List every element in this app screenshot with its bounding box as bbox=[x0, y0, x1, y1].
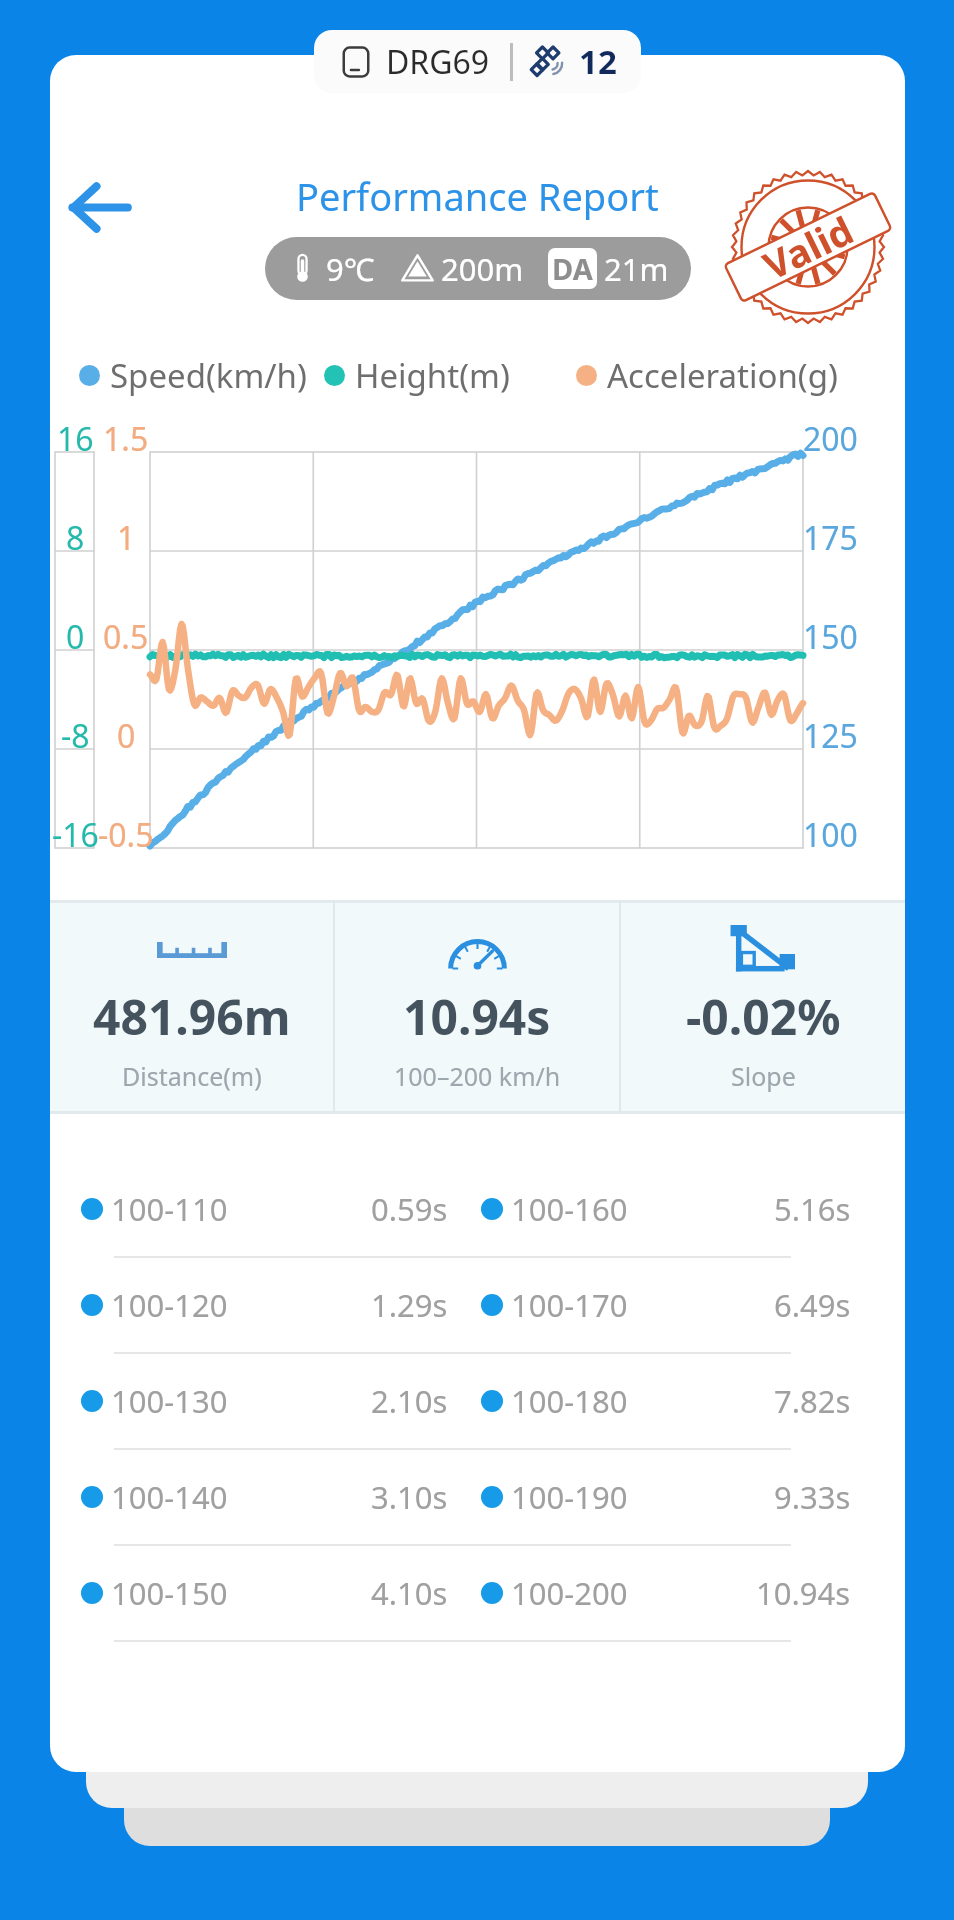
button[interactable]: 100-110 bbox=[50, 1162, 450, 1256]
staticText: Speed(km/h) bbox=[110, 353, 307, 398]
button[interactable]: DRG69 bbox=[314, 30, 641, 93]
staticText: DRG69 bbox=[386, 40, 490, 84]
staticText: 100–200 km/h bbox=[394, 1059, 561, 1093]
staticText: 16 bbox=[57, 417, 94, 461]
staticText: 100-160 bbox=[511, 1188, 628, 1230]
staticText: 200 bbox=[803, 417, 858, 461]
staticText: 0 bbox=[117, 714, 136, 758]
staticText: 100-150 bbox=[111, 1572, 228, 1614]
button[interactable]: Valid certification stamp bbox=[732, 171, 884, 323]
staticText: 8 bbox=[66, 516, 85, 560]
staticText: 100-170 bbox=[511, 1284, 628, 1326]
button[interactable]: 481.96m bbox=[50, 900, 333, 1114]
staticText: Performance Report bbox=[296, 170, 659, 222]
staticText: -0.5 bbox=[98, 813, 154, 857]
staticText: -8 bbox=[61, 714, 90, 758]
staticText: 1.29s bbox=[371, 1284, 448, 1326]
staticText: 200m bbox=[441, 248, 524, 290]
staticText: 3.10s bbox=[371, 1476, 448, 1518]
staticText: 9℃ bbox=[326, 248, 375, 290]
staticText: 7.82s bbox=[774, 1380, 851, 1422]
button[interactable]: 10.94s bbox=[335, 900, 619, 1114]
staticText: 0 bbox=[66, 615, 85, 659]
staticText: 150 bbox=[803, 615, 858, 659]
staticText: 100-180 bbox=[511, 1380, 628, 1422]
button[interactable]: 100-130 bbox=[50, 1354, 450, 1448]
button[interactable]: 9℃ bbox=[265, 237, 691, 300]
staticText: 125 bbox=[803, 714, 858, 758]
staticText: 100 bbox=[803, 813, 858, 857]
button[interactable]: Back bbox=[50, 155, 151, 259]
staticText: DA bbox=[552, 249, 593, 288]
staticText: -0.02% bbox=[686, 984, 841, 1049]
staticText: 5.16s bbox=[774, 1188, 851, 1230]
button[interactable]: 100-140 bbox=[50, 1450, 450, 1544]
button[interactable]: 100-120 bbox=[50, 1258, 450, 1352]
button[interactable]: 100-190 bbox=[450, 1450, 905, 1544]
button[interactable]: 100-160 bbox=[450, 1162, 905, 1256]
staticText: 10.94s bbox=[403, 984, 551, 1049]
staticText: 4.10s bbox=[371, 1572, 448, 1614]
staticText: 100-190 bbox=[511, 1476, 628, 1518]
staticText: 9.33s bbox=[774, 1476, 851, 1518]
staticText: 21m bbox=[604, 248, 669, 290]
staticText: 6.49s bbox=[774, 1284, 851, 1326]
button[interactable]: 100-150 bbox=[50, 1546, 450, 1640]
staticText: Slope bbox=[731, 1059, 796, 1093]
button[interactable]: 100-200 bbox=[450, 1546, 905, 1640]
staticText: 481.96m bbox=[93, 984, 291, 1049]
staticText: 1.5 bbox=[103, 417, 149, 461]
staticText: 100-140 bbox=[111, 1476, 228, 1518]
button[interactable]: 100-180 bbox=[450, 1354, 905, 1448]
staticText: Distance(m) bbox=[122, 1059, 262, 1093]
button[interactable]: -0.02% bbox=[621, 900, 905, 1114]
staticText: 10.94s bbox=[756, 1572, 851, 1614]
staticText: 100-120 bbox=[111, 1284, 228, 1326]
staticText: 1 bbox=[117, 516, 136, 560]
staticText: -16 bbox=[52, 813, 99, 857]
staticText: 0.5 bbox=[103, 615, 149, 659]
staticText: 100-130 bbox=[111, 1380, 228, 1422]
staticText: Valid bbox=[754, 203, 862, 291]
staticText: 0.59s bbox=[371, 1188, 448, 1230]
button[interactable]: 100-170 bbox=[450, 1258, 905, 1352]
staticText: 175 bbox=[803, 516, 858, 560]
staticText: Height(m) bbox=[355, 353, 510, 398]
staticText: Acceleration(g) bbox=[607, 353, 838, 398]
staticText: 100-110 bbox=[111, 1188, 228, 1230]
staticText: 100-200 bbox=[511, 1572, 628, 1614]
staticText: 2.10s bbox=[371, 1380, 448, 1422]
staticText: 12 bbox=[579, 39, 617, 84]
